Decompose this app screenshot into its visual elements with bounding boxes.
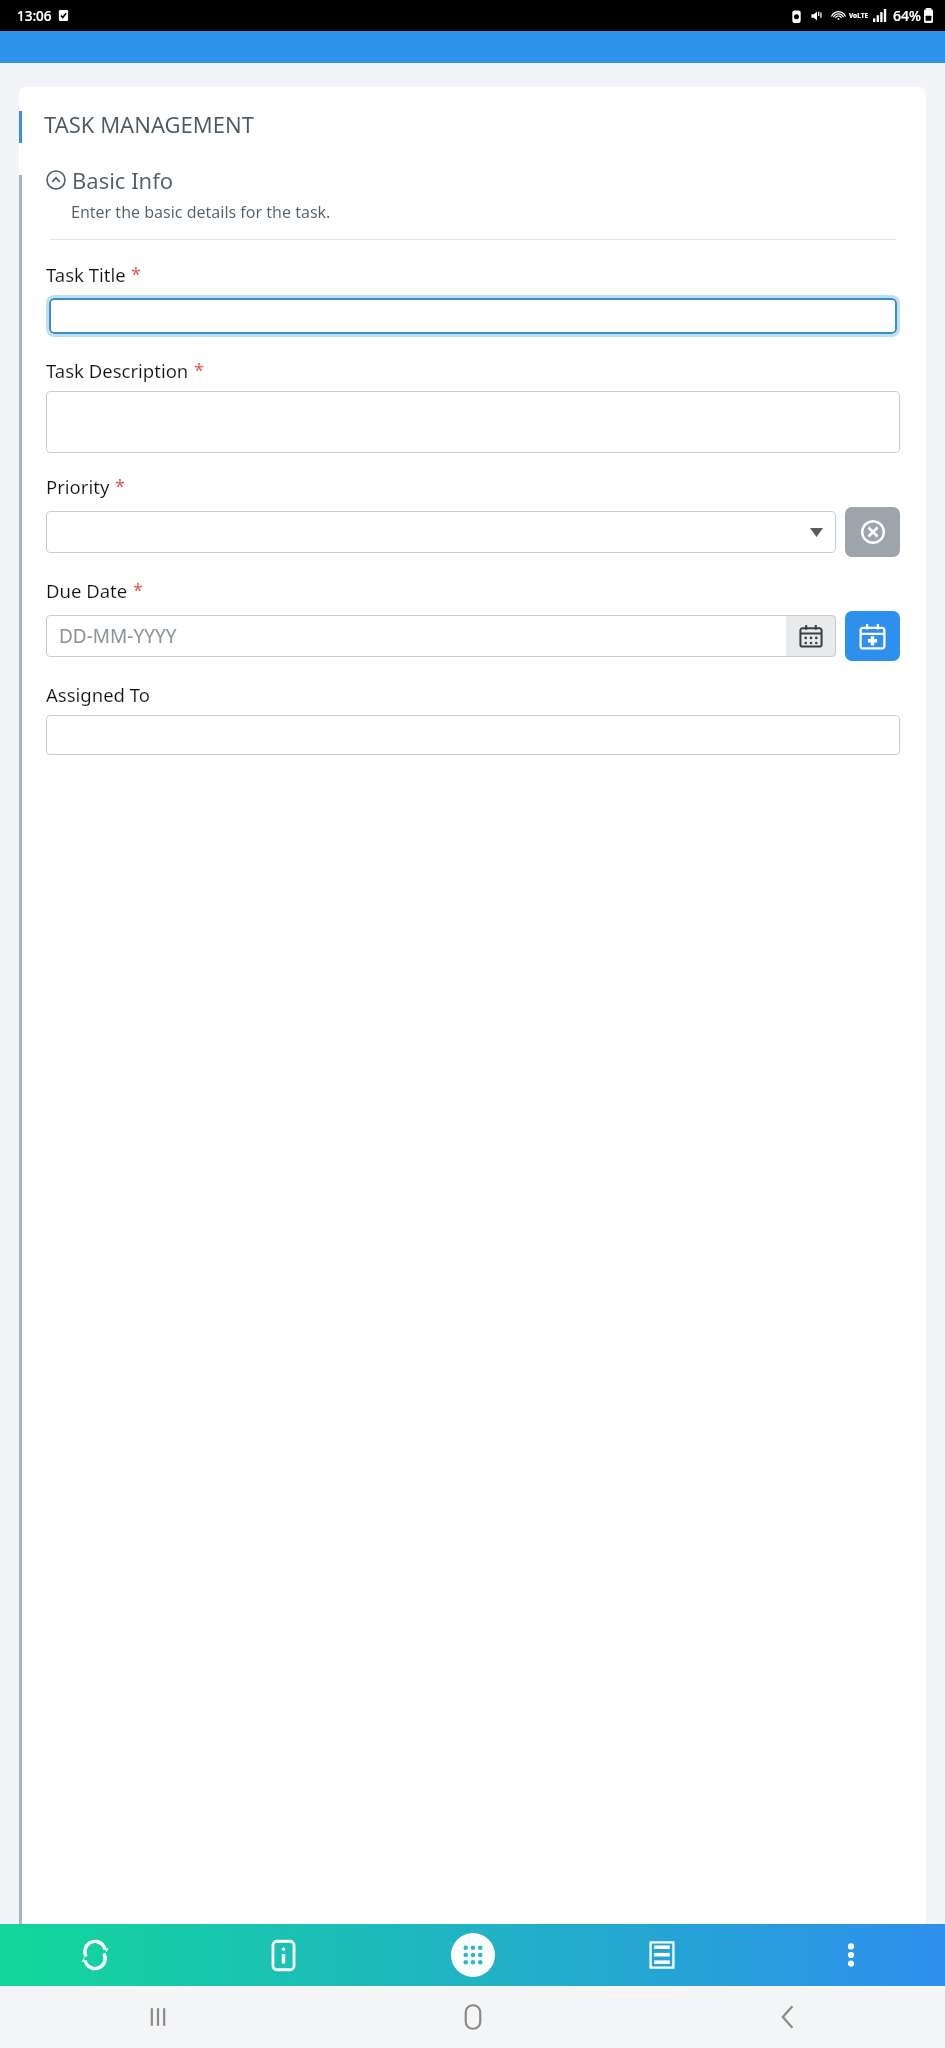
- staticText: Priority: [46, 474, 110, 499]
- button[interactable]: [46, 715, 900, 755]
- button[interactable]: [49, 298, 897, 334]
- staticText: Due Date: [46, 578, 128, 603]
- button[interactable]: More options: [756, 1924, 945, 1986]
- button[interactable]: Refresh: [0, 1924, 189, 1986]
- staticText: 64%: [893, 6, 921, 25]
- button[interactable]: Information: [189, 1924, 378, 1986]
- button[interactable]: Home: [315, 1986, 630, 2048]
- button[interactable]: Basic Info: [19, 165, 926, 195]
- staticText: *: [194, 358, 204, 383]
- staticText: VoLTE: [849, 11, 869, 20]
- button[interactable]: Pick date: [786, 615, 836, 657]
- staticText: *: [115, 474, 125, 499]
- button[interactable]: [46, 511, 836, 553]
- staticText: Enter the basic details for the task.: [71, 201, 331, 223]
- button[interactable]: Add date: [845, 611, 900, 661]
- button[interactable]: [46, 391, 900, 453]
- staticText: Basic Info: [72, 165, 174, 195]
- staticText: 13:06: [17, 7, 52, 25]
- button[interactable]: Clear priority: [845, 507, 900, 557]
- button[interactable]: Apps: [378, 1924, 567, 1986]
- button[interactable]: Recents: [0, 1986, 315, 2048]
- staticText: *: [131, 262, 141, 287]
- staticText: *: [133, 578, 143, 603]
- button[interactable]: List: [567, 1924, 756, 1986]
- staticText: TASK MANAGEMENT: [44, 109, 254, 139]
- staticText: Assigned To: [46, 682, 150, 707]
- staticText: DD-MM-YYYY: [59, 623, 177, 649]
- staticText: Task Title: [46, 262, 126, 287]
- button[interactable]: DD-MM-YYYY: [46, 615, 786, 657]
- staticText: Task Description: [46, 358, 189, 383]
- button[interactable]: Back: [630, 1986, 945, 2048]
